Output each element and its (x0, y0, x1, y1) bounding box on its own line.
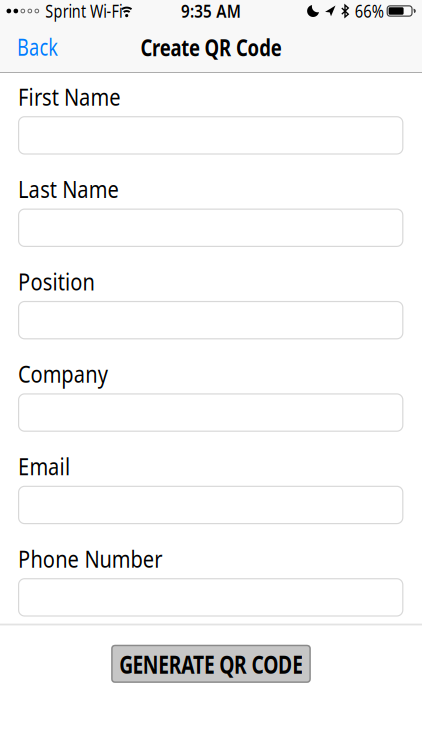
button[interactable]: Last Name text field (18, 208, 403, 247)
staticText: First Name (18, 82, 134, 112)
staticText: Company (18, 359, 120, 389)
staticText: Create QR Code (119, 31, 302, 63)
staticText: Position (18, 267, 105, 297)
staticText: Phone Number (18, 544, 181, 574)
staticText: Last Name (18, 174, 132, 204)
button[interactable]: Phone Number text field (18, 578, 403, 617)
staticText: Back (17, 32, 68, 62)
staticText: GENERATE QR CODE (90, 647, 332, 681)
button[interactable]: GENERATE QR CODE (111, 645, 311, 683)
button[interactable]: Company text field (18, 393, 403, 432)
button[interactable]: First Name text field (18, 116, 403, 155)
staticText: Sprint Wi-Fi (45, 0, 138, 22)
staticText: Email (18, 451, 77, 481)
button[interactable]: Position text field (18, 301, 403, 339)
staticText: 9:35 AM (177, 0, 245, 22)
staticText: 66% (352, 0, 386, 22)
button[interactable]: Back (0, 32, 68, 62)
button[interactable]: Email text field (18, 486, 403, 524)
